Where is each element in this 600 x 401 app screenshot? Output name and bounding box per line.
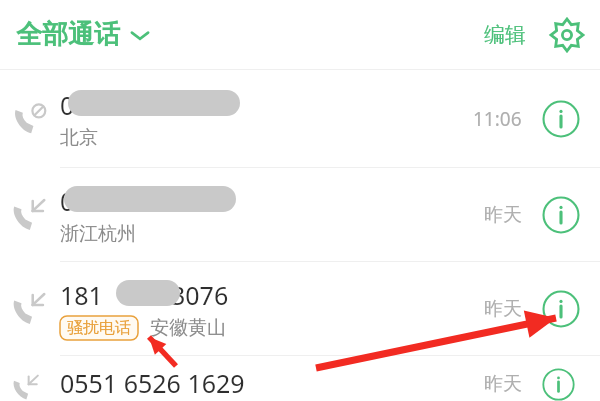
staticText: 昨天 [484,297,522,321]
button[interactable]: Settings [546,14,588,56]
staticText: 5 [195,88,210,118]
staticText: 181 [60,278,103,308]
button[interactable]: 0 [0,70,600,167]
staticText: 北京 [60,126,98,150]
button[interactable]: Call details [522,168,600,261]
staticText: 0551 6526 1629 [60,366,245,400]
button[interactable]: Call details [522,262,600,355]
staticText: 浙江杭州 [60,222,136,246]
staticText: 9 [195,184,210,214]
staticText: 11:06 [473,106,522,132]
staticText: 安徽黄山 [150,316,226,340]
staticText: 昨天 [484,372,522,396]
button[interactable]: 181 [0,262,600,355]
button[interactable]: 0551 6526 1629 [0,356,600,401]
staticText: 3076 [171,278,229,308]
staticText: 0 [60,88,75,118]
staticText: 昨天 [484,203,522,227]
button[interactable]: Call details [522,70,600,167]
button[interactable]: 0 [0,168,600,261]
staticText: 编辑 [484,22,526,48]
button[interactable]: 全部通话 [12,12,156,57]
staticText: 全部通话 [16,18,120,51]
staticText: 骚扰电话 [67,318,131,338]
button[interactable]: 编辑 [478,14,532,56]
staticText: 0 [60,184,75,214]
